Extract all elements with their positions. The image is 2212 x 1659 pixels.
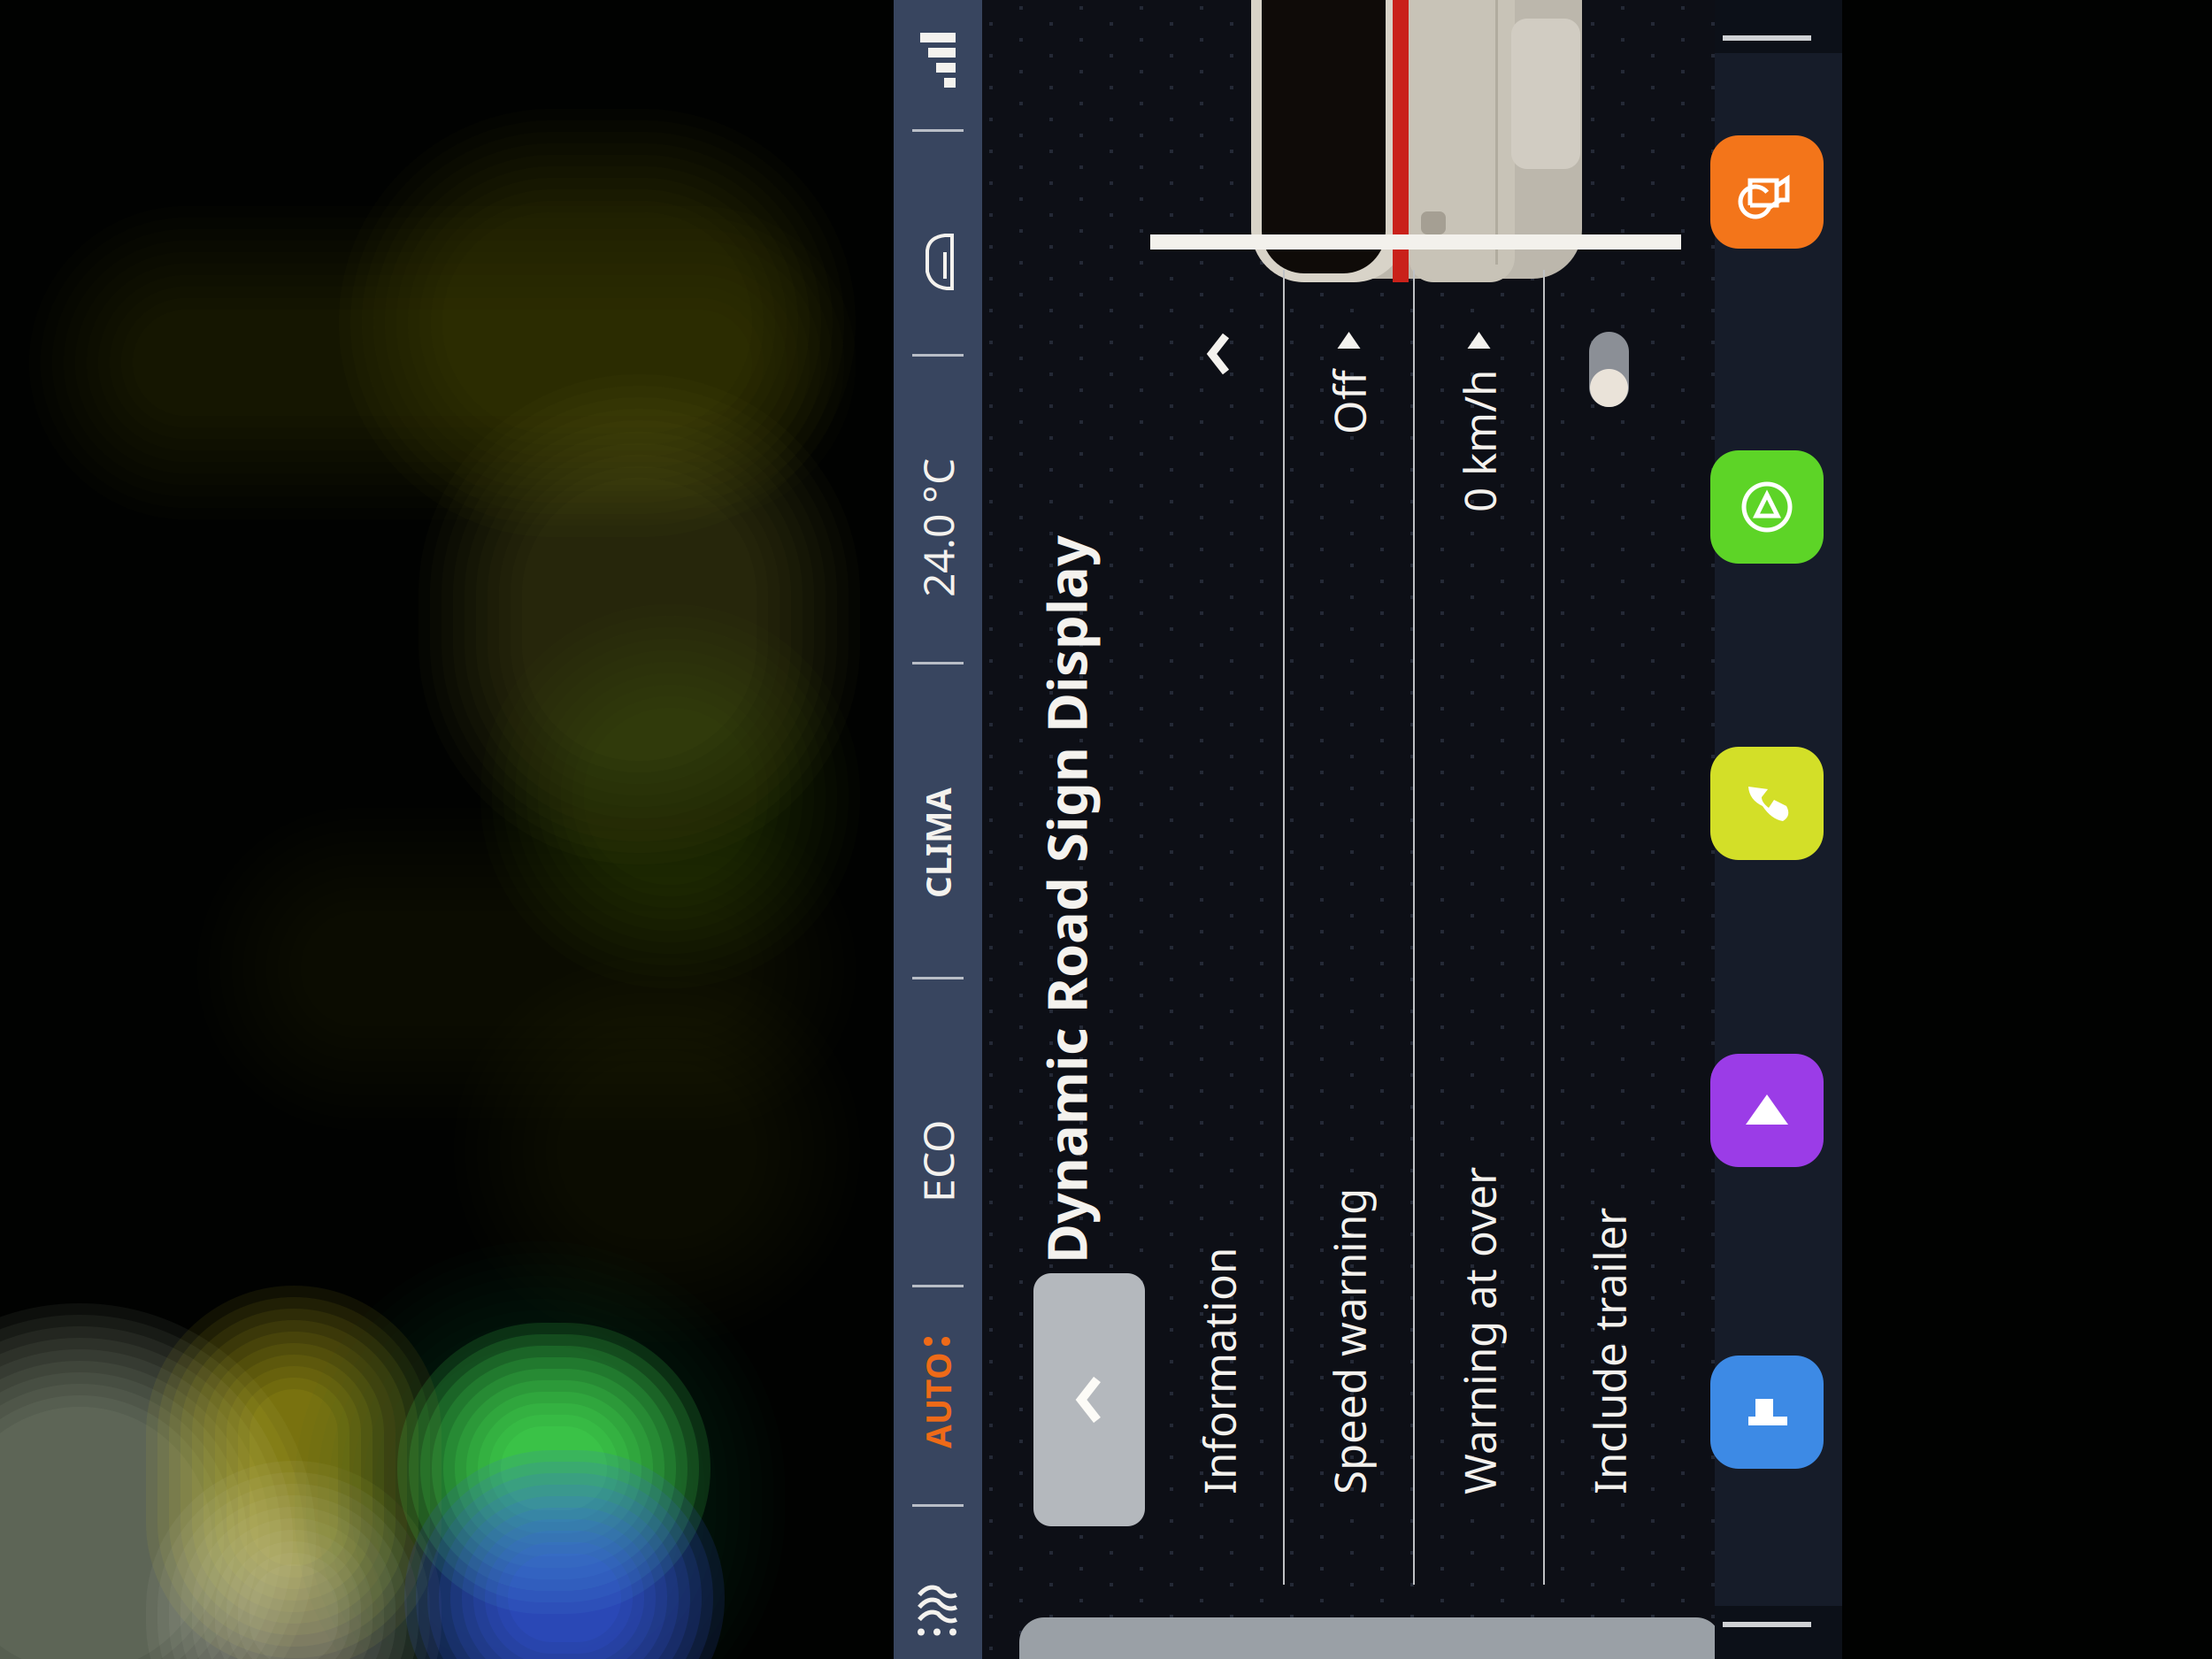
staticText: Information xyxy=(703,651,950,709)
staticText: ECO xyxy=(995,371,1077,428)
staticText: Dynamic Road Sign Display xyxy=(934,492,1662,564)
button[interactable]: Driver assistance xyxy=(1710,1054,1824,1167)
staticText: Include trailer xyxy=(703,1042,990,1100)
staticText: CLIMA xyxy=(1299,377,1410,422)
button[interactable]: Phone xyxy=(1710,747,1824,860)
button[interactable]: Information xyxy=(538,616,2197,745)
button[interactable]: Navigation xyxy=(1710,450,1824,564)
button[interactable]: Speed warning xyxy=(538,746,2197,875)
staticText: AUTO xyxy=(749,377,845,422)
button[interactable]: Warning at over xyxy=(538,876,2197,1005)
staticText: Warning at over xyxy=(703,912,1030,969)
staticText: 24.0 °C xyxy=(1600,371,1739,428)
button[interactable]: Parking xyxy=(1710,1356,1824,1469)
staticText: Speed warning xyxy=(703,781,1009,839)
button[interactable]: Back xyxy=(671,495,924,607)
staticText: 0 km/h xyxy=(1685,912,1828,969)
staticText: Off xyxy=(1763,781,1828,839)
button[interactable]: Include trailer xyxy=(538,1006,2197,1135)
button[interactable]: Range xyxy=(1710,135,1824,249)
